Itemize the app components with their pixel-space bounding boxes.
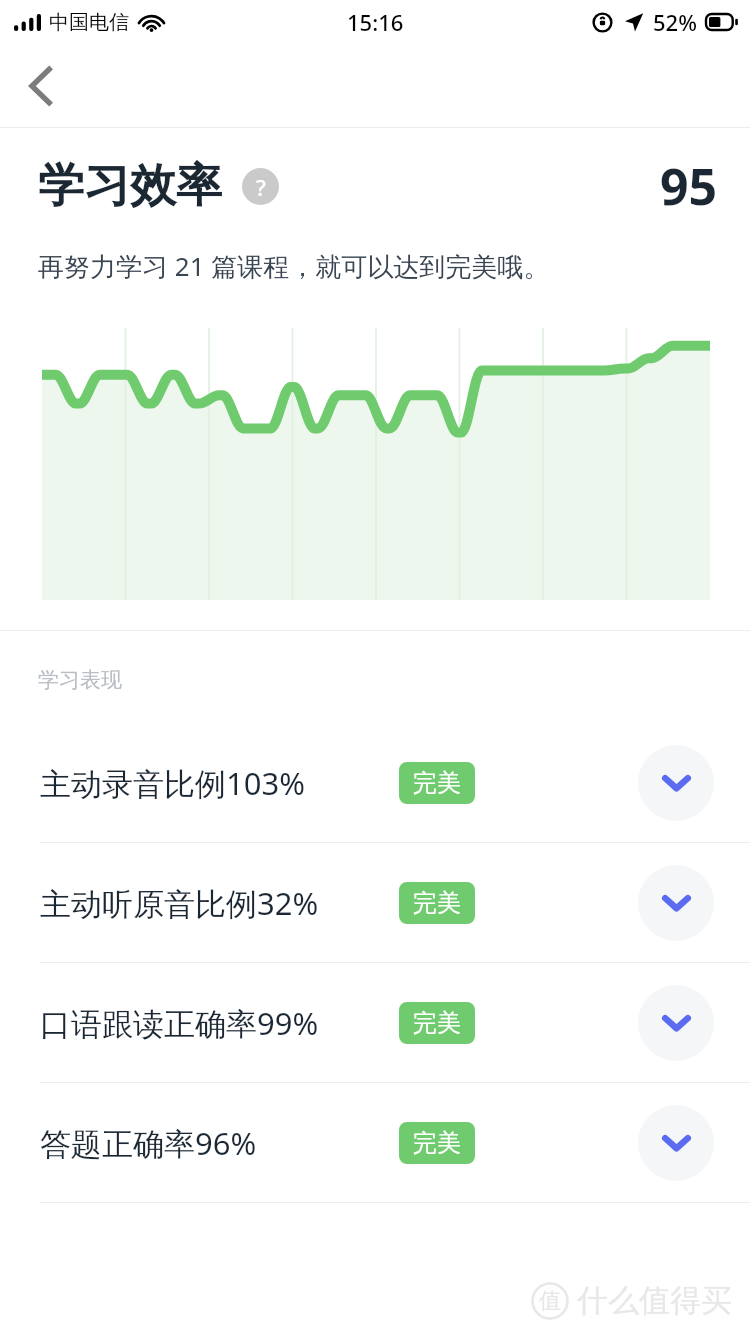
staticText: 学习效率 [38, 157, 222, 215]
button[interactable]: Expand [638, 865, 714, 941]
staticText: 完美 [413, 1008, 461, 1038]
button[interactable]: Expand [638, 985, 714, 1061]
button[interactable]: 主动录音比例103% [0, 723, 750, 842]
staticText: 什么值得买 [577, 1281, 732, 1320]
staticText: 15:16 [347, 7, 404, 37]
staticText: 主动听原音比例32% [40, 882, 319, 924]
staticText: 完美 [413, 888, 461, 918]
staticText: 值 [539, 1287, 561, 1315]
button[interactable]: Back [8, 53, 74, 119]
button[interactable]: Expand [638, 1105, 714, 1181]
staticText: 答题正确率96% [40, 1122, 257, 1164]
staticText: 再努力学习 21 篇课程，就可以达到完美哦。 [38, 248, 550, 284]
button[interactable]: 答题正确率96% [0, 1083, 750, 1202]
button[interactable]: 口语跟读正确率99% [0, 963, 750, 1082]
staticText: 学习表现 [38, 667, 122, 693]
staticText: 口语跟读正确率99% [40, 1002, 319, 1044]
button[interactable]: Help [242, 168, 279, 205]
button[interactable]: Expand [638, 745, 714, 821]
staticText: 主动录音比例103% [40, 762, 305, 804]
staticText: 52% [653, 7, 697, 37]
staticText: 中国电信 [49, 10, 129, 35]
staticText: ? [256, 172, 266, 202]
staticText: 95 [660, 152, 718, 220]
staticText: 完美 [413, 1128, 461, 1158]
staticText: 完美 [413, 768, 461, 798]
button[interactable]: 主动听原音比例32% [0, 843, 750, 962]
